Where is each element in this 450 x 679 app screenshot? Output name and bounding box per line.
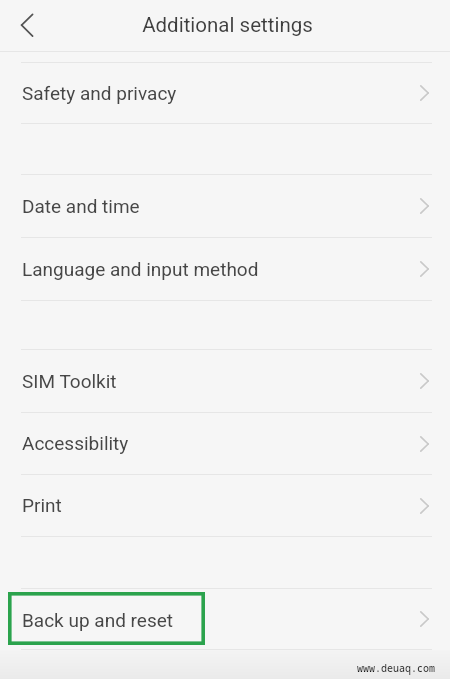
button[interactable]: Safety and privacy [0, 63, 450, 123]
staticText: Safety and privacy [22, 82, 177, 104]
button[interactable]: SIM Toolkit [0, 350, 450, 412]
button[interactable]: Accessibility [0, 413, 450, 474]
button[interactable]: Back [8, 7, 46, 45]
staticText: Print [22, 494, 62, 516]
staticText: SIM Toolkit [22, 370, 117, 392]
staticText: Date and time [22, 195, 140, 217]
staticText: Language and input method [22, 258, 259, 280]
button[interactable]: Back up and reset [0, 589, 450, 649]
button[interactable]: Date and time [0, 175, 450, 237]
staticText: Back up and reset [22, 609, 174, 631]
staticText: www.deuaq.com [357, 661, 435, 675]
staticText: Additional settings [142, 13, 313, 37]
staticText: Accessibility [22, 432, 129, 454]
button[interactable]: Print [0, 475, 450, 536]
button[interactable]: Language and input method [0, 238, 450, 300]
